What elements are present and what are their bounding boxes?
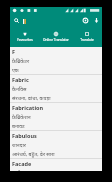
staticText: संरचना, ढांचा, कपड़ा — [12, 94, 51, 101]
staticText: Fabrication — [12, 104, 44, 111]
button[interactable]: F — [10, 47, 102, 74]
staticText: Translate — [80, 38, 94, 42]
staticText: Online Translator — [43, 38, 69, 42]
button[interactable]: Translate — [71, 27, 102, 47]
staticText: Fabulous — [12, 132, 37, 139]
staticText: मुखौटा — [12, 168, 25, 171]
staticText: फ़ैब्रिकेशन — [12, 113, 31, 120]
button[interactable]: Search — [11, 15, 22, 26]
staticText: Fabric — [12, 76, 29, 83]
button[interactable]: Fabric — [10, 75, 102, 102]
staticText: कैनविस — [12, 85, 27, 92]
button[interactable]: Settings — [80, 15, 91, 26]
staticText: Favourites — [17, 38, 33, 42]
staticText: शानदार — [12, 141, 26, 148]
staticText: फ़ैब्रिकेटर — [12, 57, 30, 64]
button[interactable]: Language — [20, 17, 28, 25]
staticText: एक — [12, 66, 19, 73]
staticText: आश्चर्य, बहुत, ढेर सारा — [12, 150, 55, 157]
button[interactable]: Favourites — [10, 27, 40, 47]
staticText: Facade — [12, 160, 32, 167]
staticText: बनावट — [12, 122, 25, 129]
button[interactable]: Fabulous — [10, 131, 102, 158]
button[interactable]: Fabrication — [10, 103, 102, 130]
button[interactable]: Download — [91, 15, 102, 26]
staticText: F — [12, 48, 16, 55]
button[interactable]: Facade — [10, 159, 102, 171]
button[interactable]: Online Translator — [40, 27, 71, 47]
